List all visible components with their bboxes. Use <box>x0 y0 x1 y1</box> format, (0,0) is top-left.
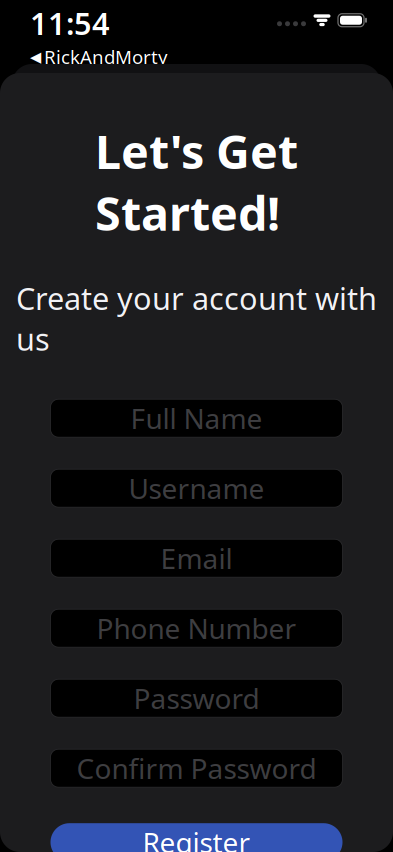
staticText: Email <box>160 540 232 577</box>
staticText: Create your account with us <box>16 278 377 359</box>
staticText: ◀ <box>30 48 41 65</box>
button[interactable]: Phone Number <box>50 609 342 647</box>
staticText: Register <box>142 824 250 852</box>
staticText: Let's Get Started! <box>95 120 298 244</box>
button[interactable]: Full Name <box>50 399 342 437</box>
button[interactable]: Username <box>50 469 342 507</box>
button[interactable]: Email <box>50 539 342 577</box>
button[interactable]: Register <box>50 823 342 852</box>
staticText: Username <box>128 470 264 507</box>
staticText: RickAndMorty <box>44 44 168 69</box>
button[interactable]: Password <box>50 679 342 717</box>
staticText: Confirm Password <box>76 750 316 787</box>
button[interactable]: Confirm Password <box>50 749 342 787</box>
staticText: 11:54 <box>30 3 110 43</box>
staticText: Password <box>133 680 259 717</box>
staticText: Phone Number <box>96 610 296 647</box>
staticText: Full Name <box>130 400 262 437</box>
